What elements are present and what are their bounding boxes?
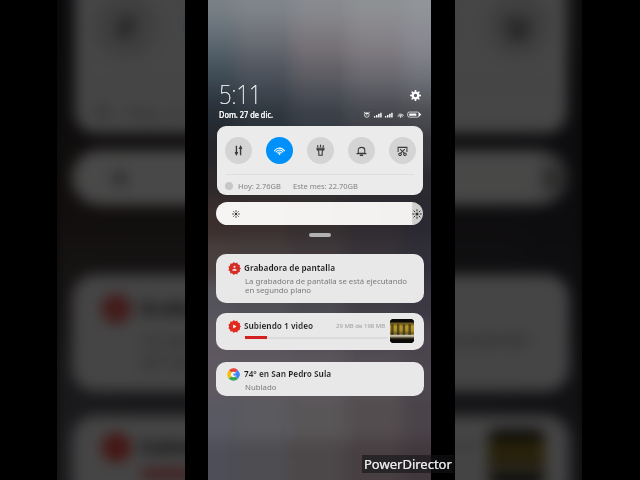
button[interactable]: Brightness (216, 202, 423, 225)
button[interactable]: Flashlight (273, 0, 371, 85)
button[interactable]: Screenshot (469, 0, 567, 85)
staticText: Subiendo 1 video (244, 320, 314, 331)
staticText: Dom. 27 de dic. (219, 109, 274, 120)
button[interactable]: Screenshot (382, 126, 423, 175)
staticText: 5:11 (219, 76, 262, 111)
staticText: PowerDirector (364, 455, 452, 473)
staticText: Hoy: 2.76GB (238, 181, 281, 191)
staticText: 29 MB de 198 MB (359, 437, 478, 456)
staticText: La grabadora de pantalla se está ejecuta… (245, 276, 408, 296)
button[interactable]: Subiendo 1 video (216, 313, 424, 350)
staticText: 74° en San Pedro Sula (244, 368, 332, 379)
button[interactable]: Flashlight (300, 126, 341, 175)
staticText: Grabadora de pantalla (139, 293, 359, 320)
button[interactable]: Brightness (72, 150, 567, 205)
button[interactable]: Wi-Fi (175, 0, 273, 85)
staticText: Subiendo 1 video (139, 432, 306, 458)
button[interactable]: Notifications (371, 0, 469, 85)
staticText: Este mes: 22.70GB (256, 100, 412, 124)
button[interactable]: Mobile data (74, 0, 175, 85)
button[interactable]: Mobile data (217, 126, 259, 175)
button[interactable]: Notifications (341, 126, 382, 175)
button[interactable]: Settings (402, 82, 428, 108)
staticText: Hoy: 2.76GB (125, 100, 227, 124)
staticText: Este mes: 22.70GB (293, 181, 358, 191)
staticText: 29 MB de 198 MB (336, 322, 386, 330)
button[interactable]: Grabadora de pantalla (72, 274, 569, 391)
button[interactable]: 74° en San Pedro Sula (216, 362, 424, 396)
staticText: Grabadora de pantalla (244, 262, 336, 273)
staticText: La grabadora de pantalla se está ejecuta… (141, 327, 531, 375)
button[interactable]: Wi-Fi (259, 126, 300, 175)
button[interactable]: Subiendo 1 video (72, 415, 569, 480)
button[interactable]: Grabadora de pantalla (216, 254, 424, 303)
staticText: Nublado (245, 382, 277, 393)
